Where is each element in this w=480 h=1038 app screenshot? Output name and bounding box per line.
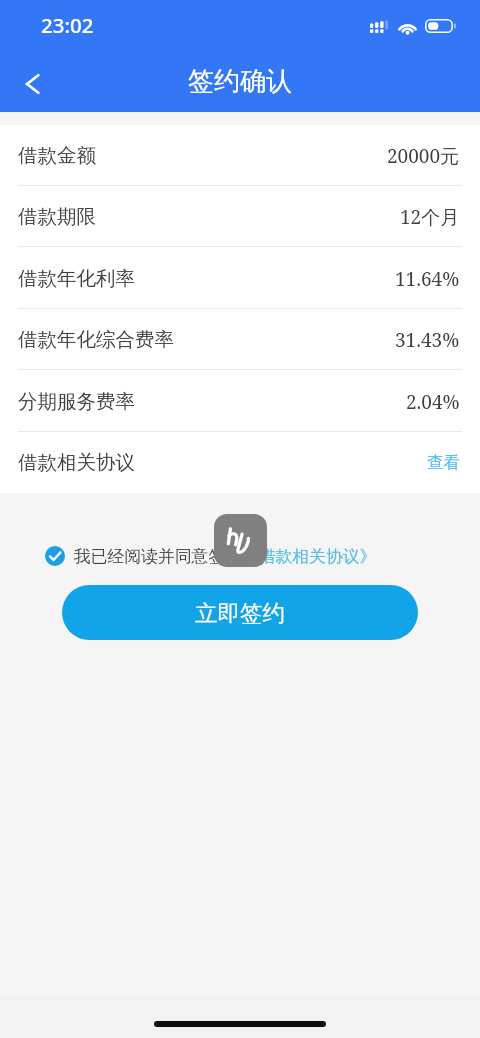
button[interactable]: Agree to loan agreement [45, 546, 65, 566]
staticText: 12个月 [400, 204, 460, 230]
staticText: 借款年化利率 [18, 266, 135, 291]
button[interactable]: 借款相关协议 [0, 432, 480, 493]
staticText: 我已经阅读并同意签署《借款相关协议》 [74, 546, 377, 567]
staticText: 借款年化综合费率 [18, 327, 174, 352]
button[interactable]: 我已经阅读并同意签署《借款相关协议》 [74, 546, 377, 567]
staticText: 23:02 [41, 11, 94, 39]
staticText: 11.64% [395, 266, 460, 292]
button[interactable]: 立即签约 [62, 585, 418, 640]
staticText: 签约确认 [188, 65, 292, 98]
staticText: 借款相关协议 [18, 450, 135, 475]
button[interactable]: 借款年化综合费率 [0, 309, 480, 370]
staticText: 分期服务费率 [18, 389, 135, 414]
button[interactable]: 借款期限 [0, 186, 480, 247]
staticText: 查看 [427, 452, 460, 473]
button[interactable]: 借款金额 [0, 125, 480, 186]
button[interactable]: 借款年化利率 [0, 248, 480, 309]
staticText: 借款期限 [18, 204, 96, 229]
staticText: 31.43% [395, 327, 460, 353]
staticText: 借款金额 [18, 143, 96, 168]
button[interactable]: Back [6, 58, 58, 110]
staticText: 20000元 [387, 143, 460, 169]
staticText: 2.04% [406, 389, 460, 415]
button[interactable]: 分期服务费率 [0, 371, 480, 432]
staticText: 立即签约 [195, 599, 285, 627]
